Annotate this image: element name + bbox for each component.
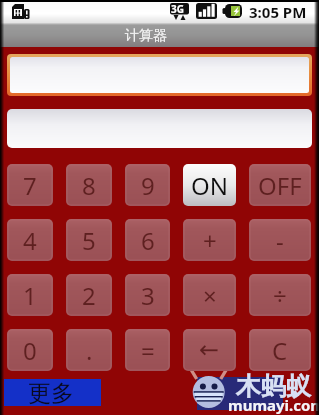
button[interactable]: 2 [66, 274, 112, 316]
staticText: 7 [23, 169, 37, 202]
button[interactable]: 更多 [4, 379, 101, 406]
button[interactable]: Second operand input [7, 109, 312, 148]
button[interactable]: 6 [125, 219, 170, 261]
staticText: × [203, 279, 217, 312]
button[interactable]: 5 [66, 219, 112, 261]
button[interactable]: 0 [7, 329, 53, 371]
staticText: 2 [82, 279, 96, 312]
button[interactable]: C [249, 329, 311, 371]
staticText: 木蚂蚁 [236, 371, 311, 402]
staticText: 3:05 PM [249, 2, 307, 22]
staticText: OFF [258, 169, 302, 202]
button[interactable]: × [183, 274, 236, 316]
button[interactable]: First operand input [10, 57, 309, 93]
button[interactable]: + [183, 219, 236, 261]
staticText: 6 [141, 224, 155, 257]
button[interactable]: 4 [7, 219, 53, 261]
button[interactable]: 3 [125, 274, 170, 316]
staticText: mumayi.com [228, 395, 319, 415]
staticText: C [272, 334, 288, 367]
button[interactable]: 7 [7, 164, 53, 206]
button[interactable]: . [66, 329, 112, 371]
staticText: 3 [141, 279, 155, 312]
staticText: 9 [141, 169, 155, 202]
staticText: = [141, 334, 155, 367]
button[interactable]: ← [183, 329, 236, 371]
staticText: ← [199, 336, 220, 364]
button[interactable]: 1 [7, 274, 53, 316]
staticText: 计算器 [125, 27, 167, 45]
staticText: 更多 [28, 379, 74, 406]
staticText: ON [191, 169, 228, 202]
staticText: 4 [23, 224, 37, 257]
button[interactable]: - [249, 219, 311, 261]
staticText: 3G [171, 2, 184, 16]
staticText: + [203, 224, 217, 257]
staticText: 5 [82, 224, 96, 257]
button[interactable]: = [125, 329, 170, 371]
button[interactable]: 8 [66, 164, 112, 206]
button[interactable]: 9 [125, 164, 170, 206]
button[interactable]: ON [183, 164, 236, 206]
staticText: - [276, 224, 284, 257]
staticText: . [86, 334, 93, 367]
button[interactable]: OFF [249, 164, 311, 206]
button[interactable]: ÷ [249, 274, 311, 316]
staticText: 8 [82, 169, 96, 202]
staticText: ÷ [273, 279, 287, 312]
staticText: 0 [23, 334, 37, 367]
staticText: 1 [23, 279, 37, 312]
